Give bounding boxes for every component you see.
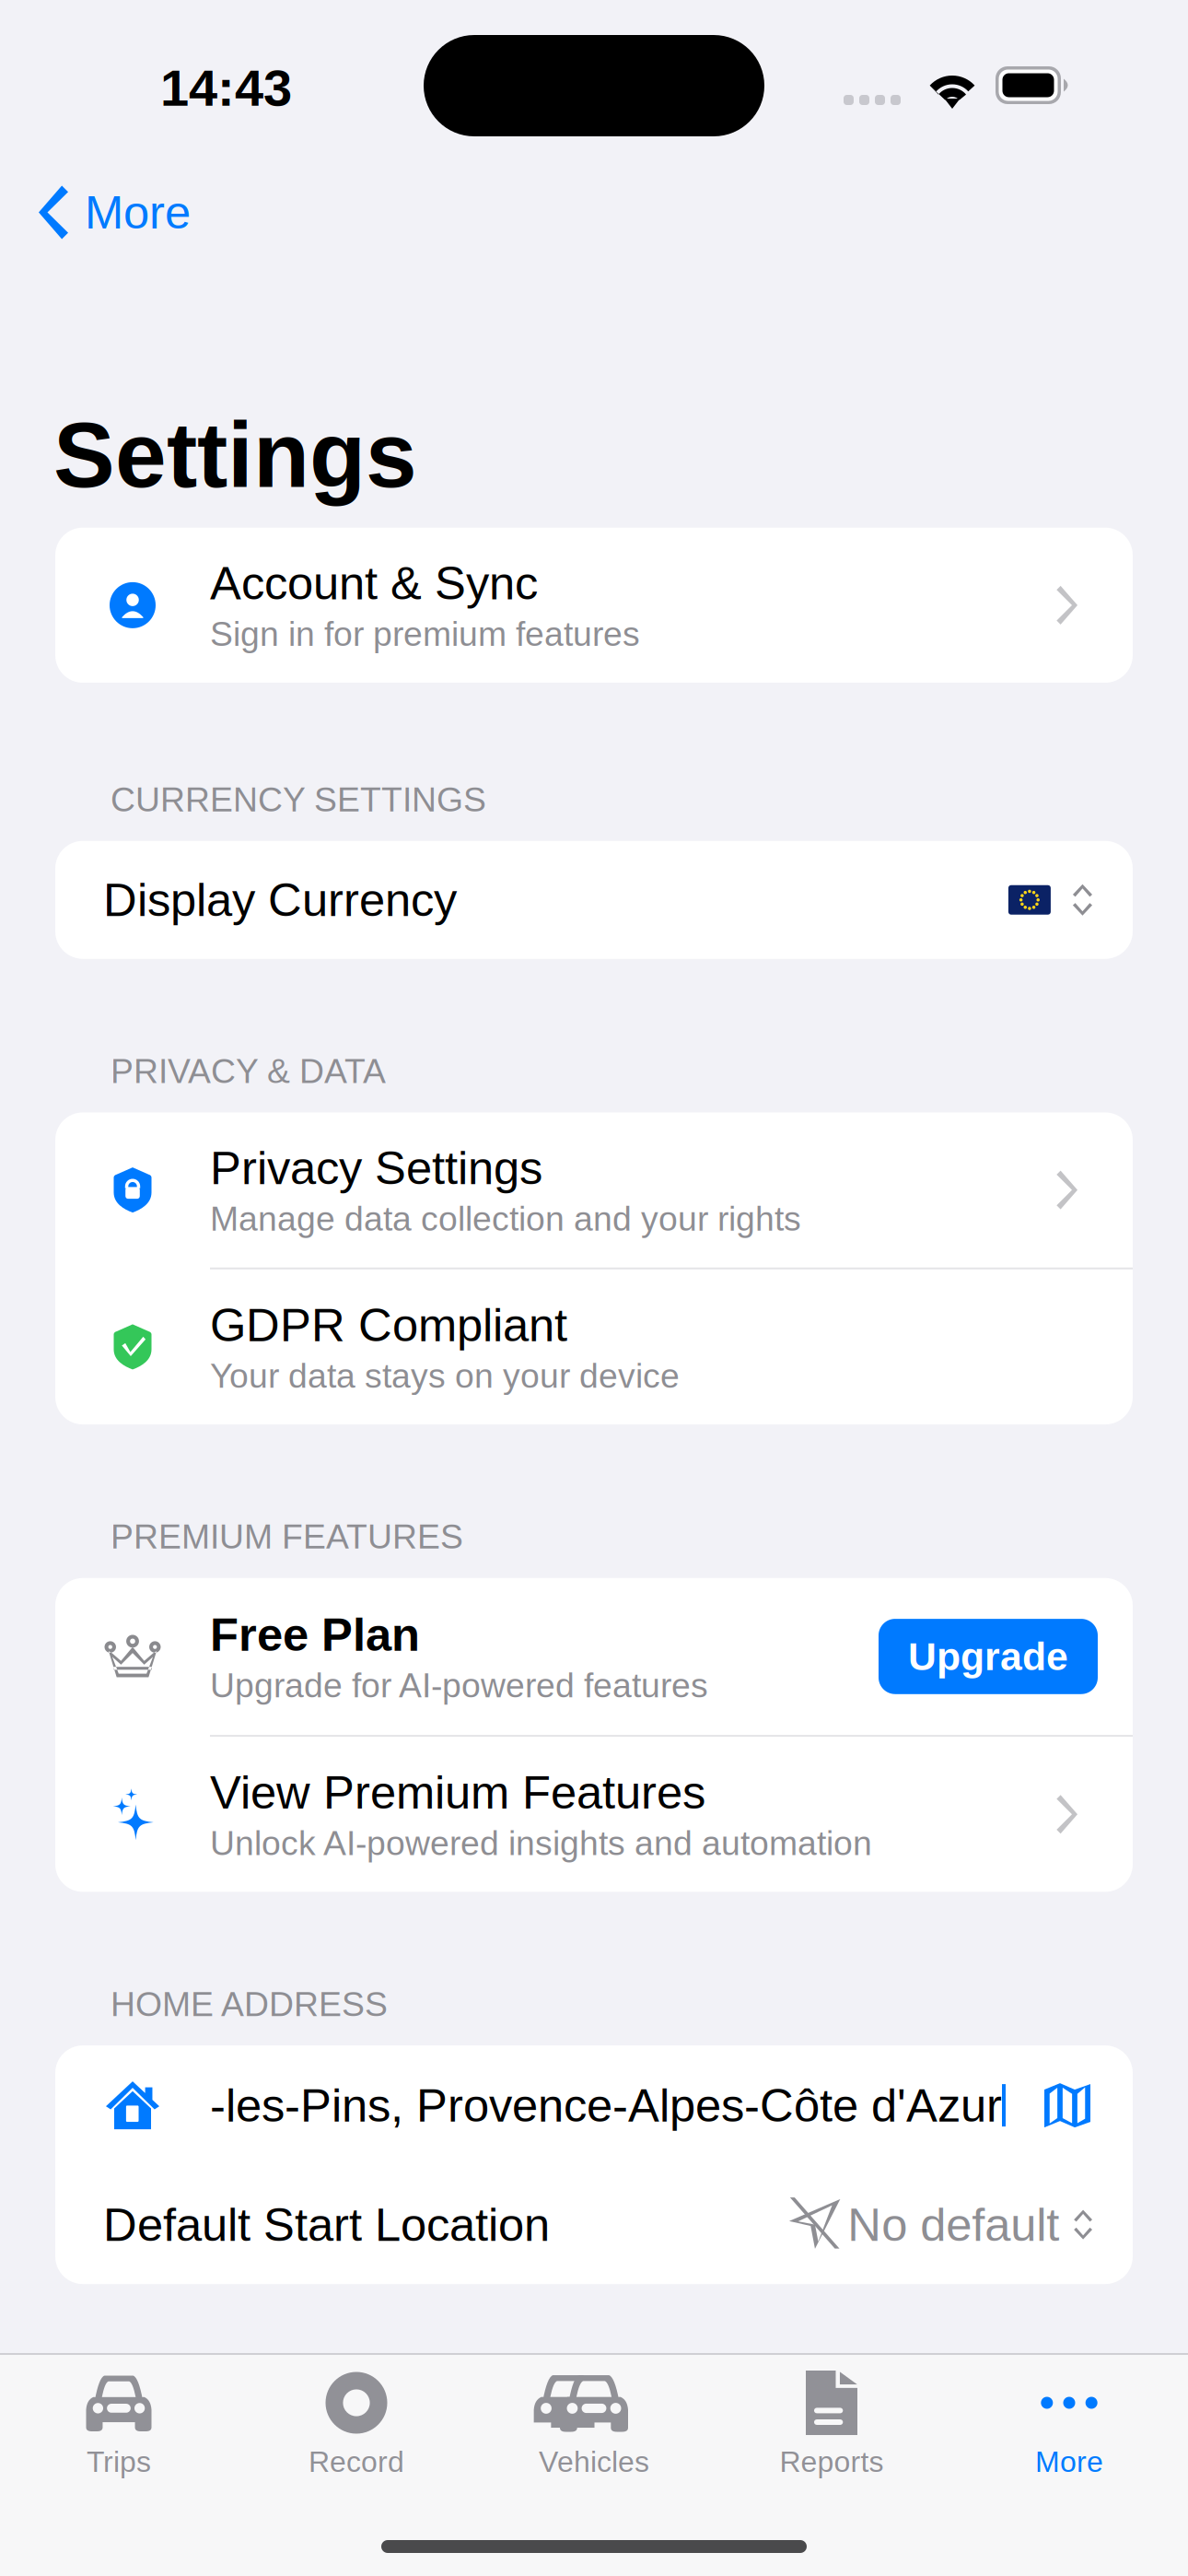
staticText: More [1035,2445,1103,2478]
button[interactable]: Upgrade [879,1619,1098,1694]
staticText: Account & Sync [210,557,538,609]
staticText: PRIVACY & DATA [111,1052,386,1090]
staticText: HOME ADDRESS [111,1985,388,2023]
staticText: 14:43 [160,59,292,117]
staticText: GDPR Compliant [210,1299,567,1351]
button[interactable]: Default Start Location [55,2165,1133,2284]
staticText: Display Currency [103,874,457,926]
staticText: Settings [53,404,417,506]
staticText: Unlock AI-powered insights and automatio… [210,1824,872,1862]
staticText: More [85,186,191,238]
button[interactable]: More [950,2355,1188,2493]
staticText: Record [309,2445,404,2478]
staticText: Your data stays on your device [210,1357,680,1395]
staticText: Vehicles [539,2445,649,2478]
button[interactable]: Show on map [1033,2083,1101,2127]
button[interactable]: View Premium Features [55,1737,1133,1892]
button[interactable]: Display Currency [55,841,1133,959]
staticText: Manage data collection and your rights [210,1200,801,1238]
staticText: Upgrade for AI-powered features [210,1666,708,1705]
button[interactable]: GDPR Compliant [55,1269,1133,1424]
staticText: Reports [780,2445,884,2478]
staticText: Sign in for premium features [210,615,640,653]
staticText: PREMIUM FEATURES [111,1517,463,1556]
button[interactable]: Trips [0,2355,238,2493]
button[interactable]: Reports [713,2355,950,2493]
staticText: CURRENCY SETTINGS [111,780,486,819]
button[interactable]: More [0,166,218,258]
button[interactable]: Privacy Settings [55,1112,1133,1267]
staticText: Free Plan [210,1608,420,1661]
button[interactable]: Vehicles [475,2355,713,2493]
staticText: No default [847,2199,1059,2251]
staticText: Upgrade [908,1635,1068,1678]
button[interactable]: Record [238,2355,475,2493]
staticText: View Premium Features [210,1766,705,1818]
staticText: Default Start Location [103,2199,550,2251]
staticText: -les-Pins, Provence-Alpes-Côte d'Azur [210,2079,1002,2131]
staticText: Trips [87,2445,151,2478]
staticText: Privacy Settings [210,1142,542,1194]
button[interactable]: Account & Sync [55,528,1133,683]
